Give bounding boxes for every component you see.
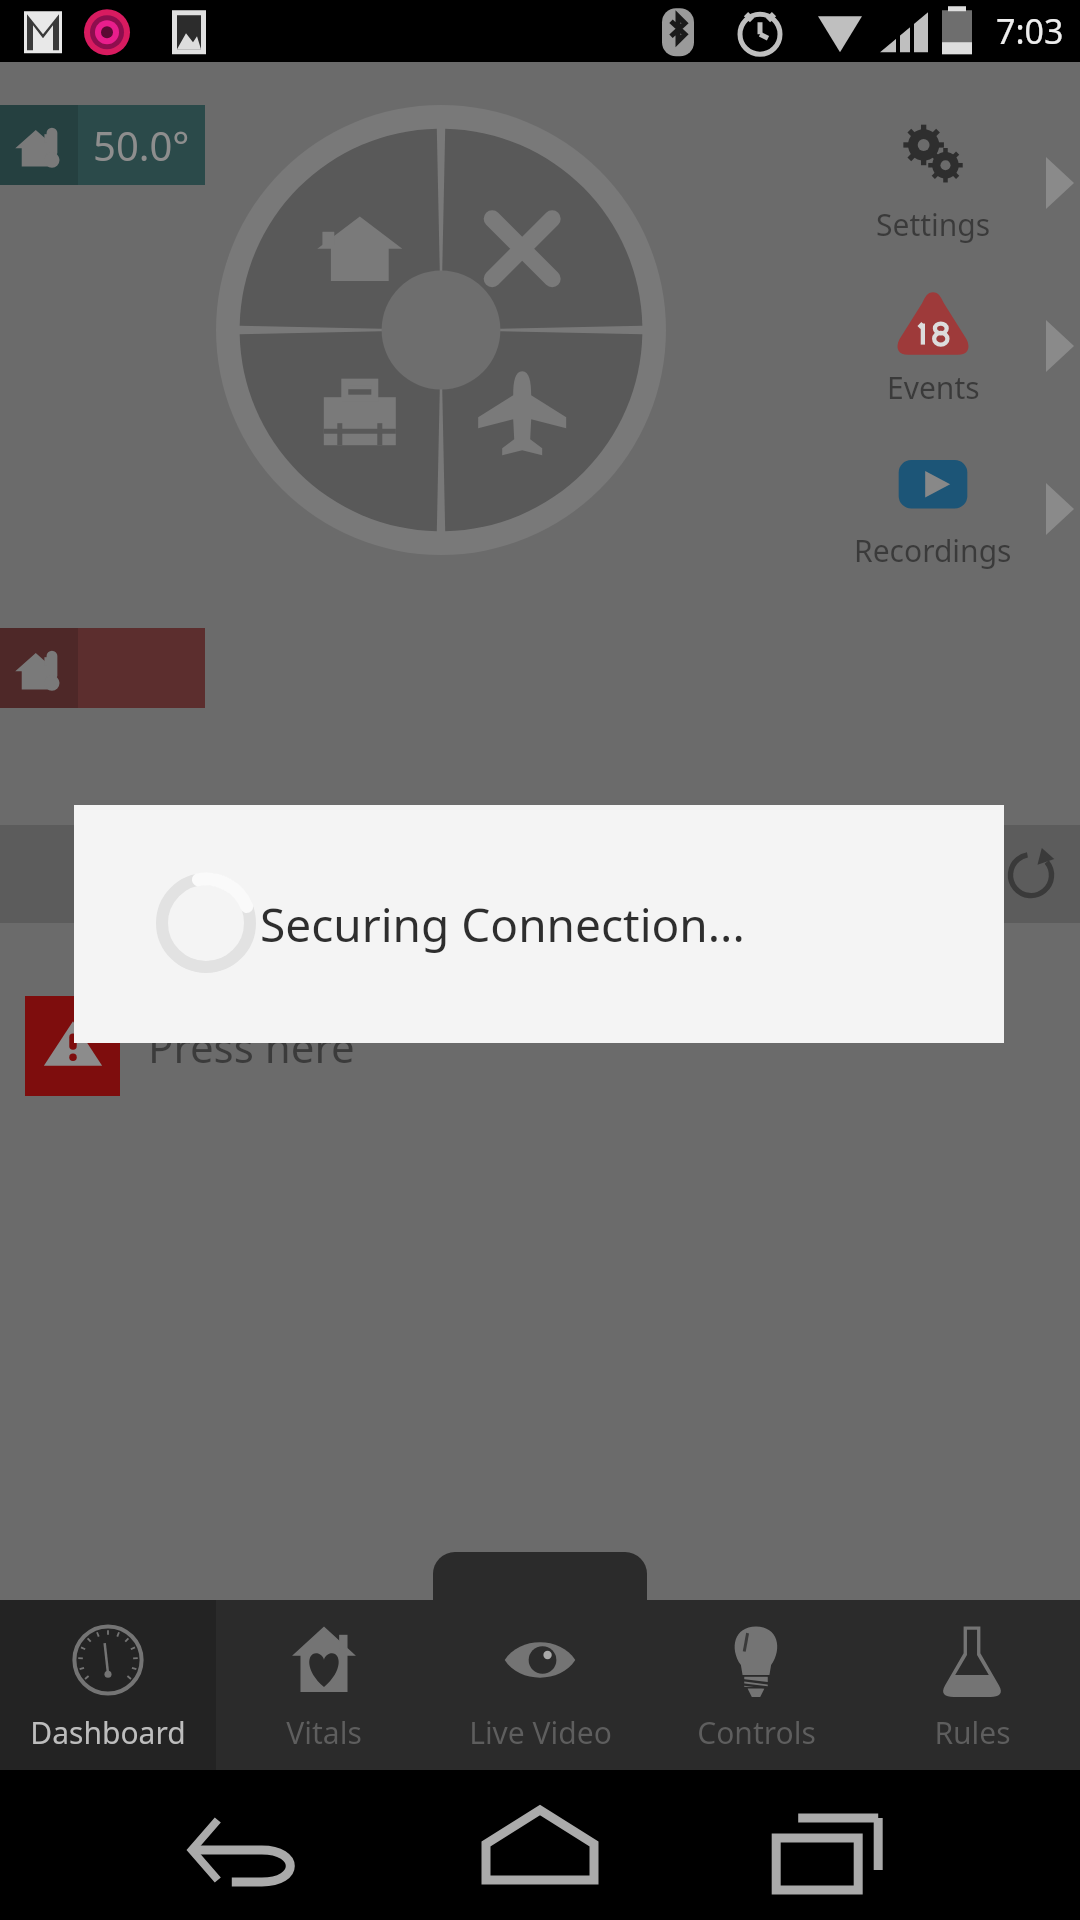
staticText: Rules <box>934 1712 1011 1753</box>
button[interactable]: Dashboard <box>0 1600 216 1770</box>
button[interactable]: Events <box>820 283 1080 408</box>
staticText: Recordings <box>854 530 1012 571</box>
staticText: Settings <box>876 204 991 245</box>
button[interactable]: 50.0° <box>0 105 205 185</box>
button[interactable]: Rules <box>864 1600 1080 1770</box>
staticText: Events <box>887 367 980 408</box>
button[interactable]: Controls <box>648 1600 864 1770</box>
button[interactable] <box>433 1552 647 1600</box>
button[interactable]: Vitals <box>216 1600 432 1770</box>
staticText: Controls <box>697 1712 816 1753</box>
button[interactable]: Refresh <box>1004 847 1058 901</box>
staticText: Vitals <box>286 1712 362 1753</box>
button[interactable]: Recordings <box>820 446 1080 571</box>
button[interactable]: Settings <box>820 120 1080 245</box>
button[interactable]: Live Video <box>432 1600 648 1770</box>
staticText: Live Video <box>469 1712 612 1753</box>
button[interactable]: Mode selector <box>216 105 666 555</box>
button[interactable] <box>0 628 205 708</box>
staticText: Dashboard <box>30 1712 186 1753</box>
staticText: Press here <box>148 1018 355 1075</box>
staticText: 50.0° <box>93 118 190 172</box>
staticText: 7:03 <box>996 8 1064 54</box>
button[interactable]: Press here <box>0 995 1080 1097</box>
staticText: Securing Connection... <box>260 893 745 956</box>
